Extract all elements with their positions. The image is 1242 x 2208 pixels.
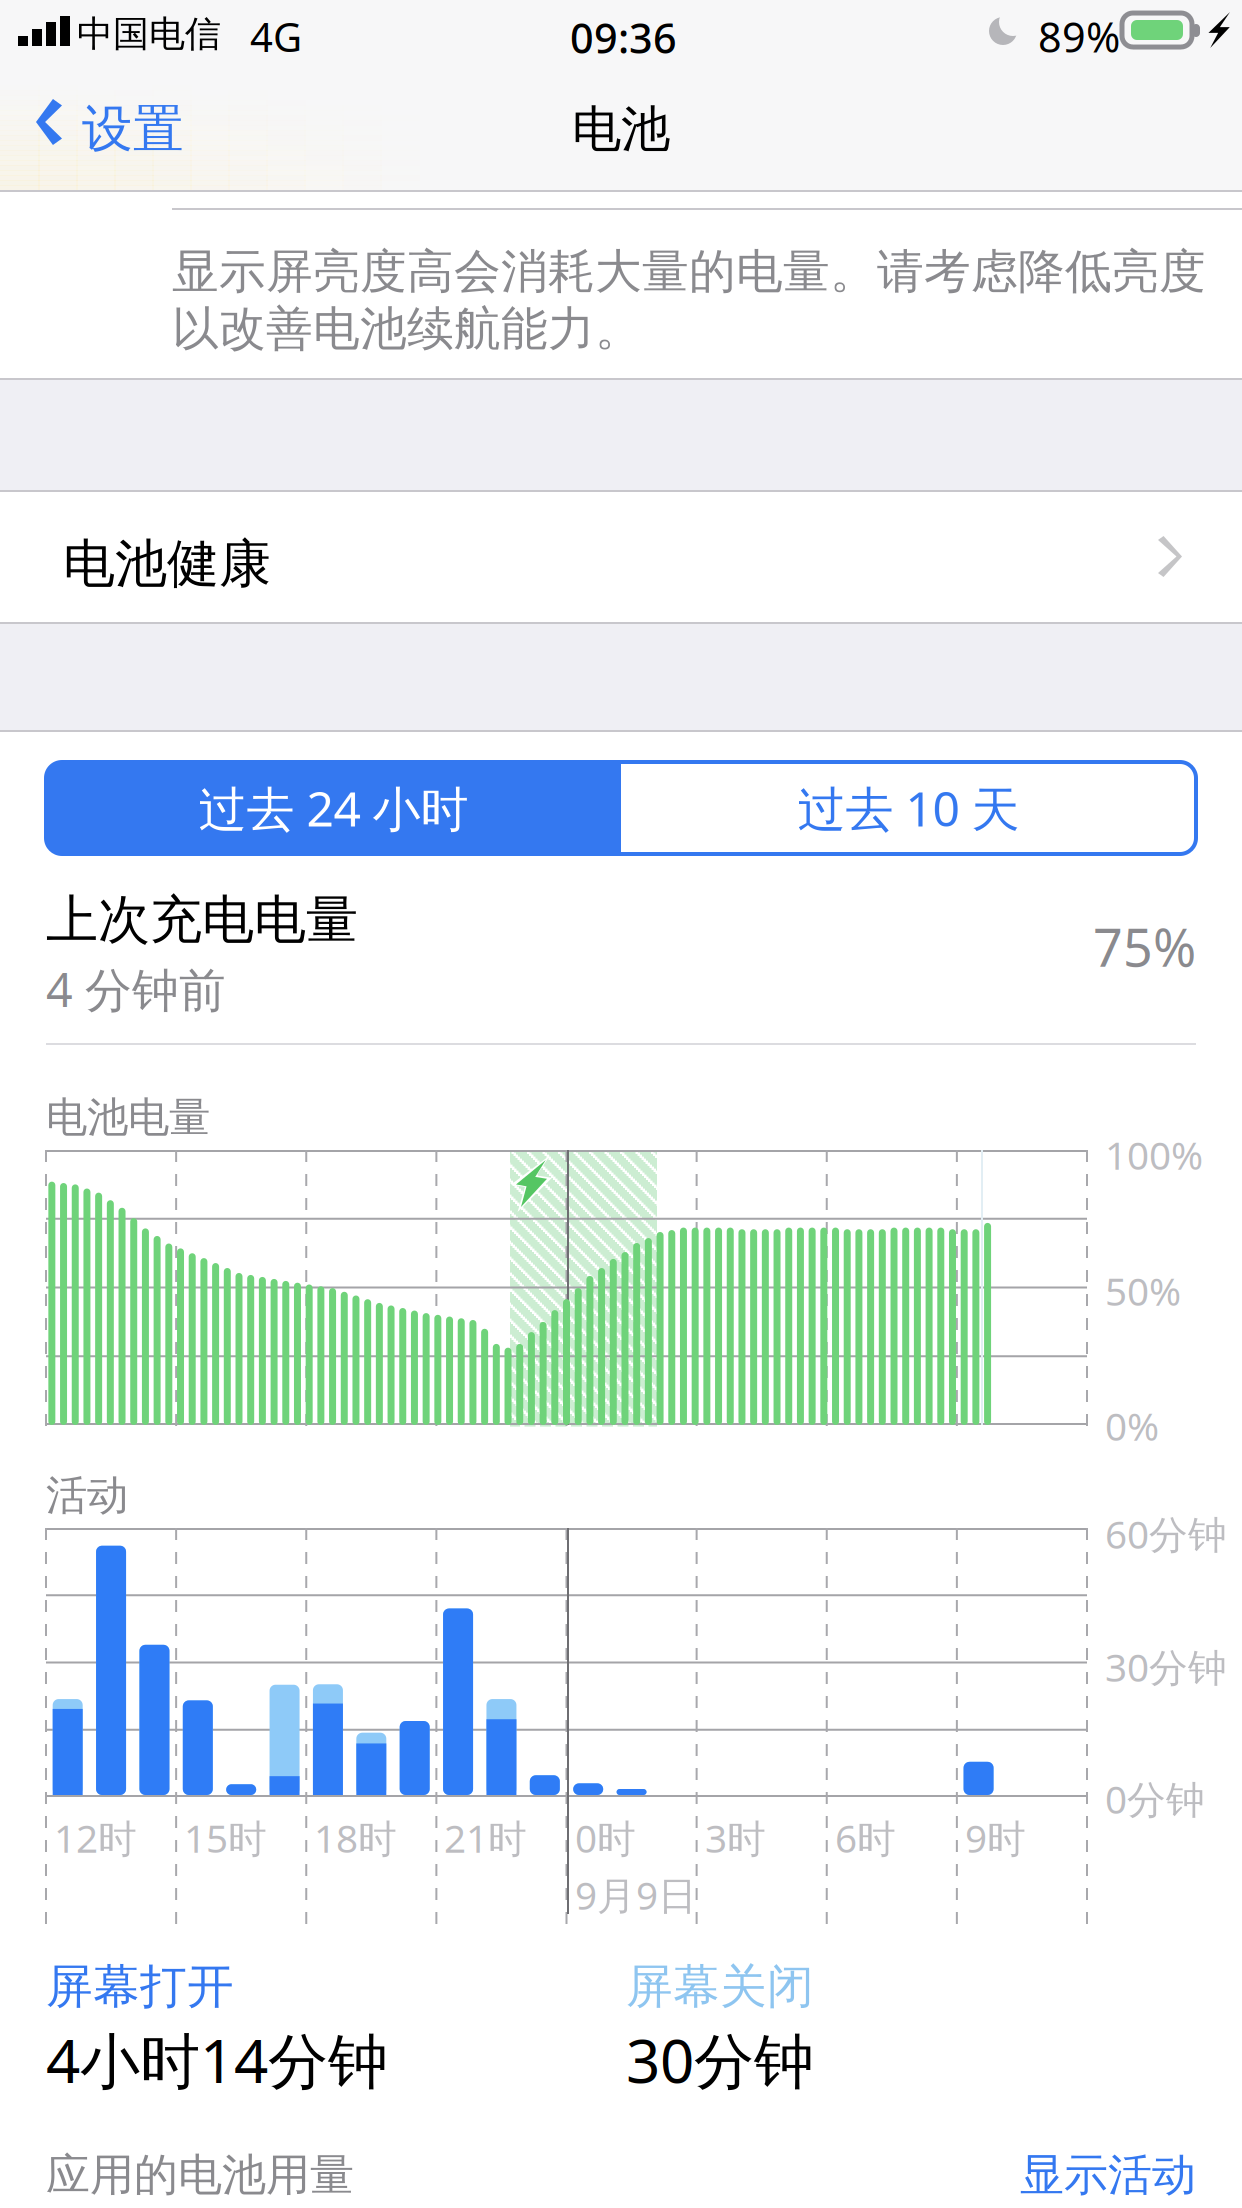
staticText: 09:36 <box>570 10 677 65</box>
staticText: 中国电信 <box>77 12 221 56</box>
staticText: 50% <box>1105 1265 1181 1316</box>
staticText: 4G <box>250 10 302 63</box>
staticText: 应用的电池用量 <box>46 2148 354 2202</box>
staticText: 电池电量 <box>46 1092 210 1143</box>
staticText: 30分钟 <box>1105 1641 1227 1692</box>
staticText: 电池 <box>572 99 670 160</box>
staticText: 过去 10 天 <box>797 776 1019 840</box>
button[interactable]: 电池健康 <box>0 492 1242 622</box>
staticText: 0分钟 <box>1105 1773 1205 1824</box>
staticText: 100% <box>1105 1129 1203 1180</box>
staticText: 18时 <box>314 1812 397 1863</box>
staticText: 电池健康 <box>63 532 271 596</box>
staticText: 89% <box>1038 9 1120 64</box>
button[interactable]: 过去 24 小时 <box>46 762 621 854</box>
staticText: 9时 <box>965 1812 1026 1863</box>
staticText: 15时 <box>184 1812 267 1863</box>
staticText: 活动 <box>46 1470 128 1521</box>
staticText: 60分钟 <box>1105 1508 1227 1559</box>
staticText: 30分钟 <box>626 2020 814 2100</box>
staticText: 12时 <box>54 1812 137 1863</box>
staticText: 0% <box>1105 1400 1159 1451</box>
staticText: 显示活动 <box>1020 2148 1196 2202</box>
staticText: 屏幕关闭 <box>626 1958 814 2015</box>
button[interactable]: 显示活动 <box>46 2148 1196 2202</box>
staticText: 3时 <box>705 1812 766 1863</box>
staticText: 显示屏亮度高会消耗大量的电量。请考虑降低亮度以改善电池续航能力。 <box>172 243 1206 358</box>
staticText: 21时 <box>444 1812 527 1863</box>
staticText: 上次充电电量 <box>46 888 358 952</box>
staticText: 4 分钟前 <box>46 958 226 1020</box>
staticText: 6时 <box>835 1812 896 1863</box>
button[interactable]: 设置 <box>0 74 250 170</box>
staticText: 屏幕打开 <box>46 1958 234 2015</box>
staticText: 过去 24 小时 <box>198 776 468 840</box>
staticText: 0时 <box>575 1812 636 1863</box>
staticText: 9月9日 <box>575 1869 697 1920</box>
staticText: 75% <box>1093 912 1196 981</box>
staticText: 设置 <box>82 98 184 160</box>
button[interactable]: 过去 10 天 <box>621 762 1196 854</box>
staticText: 4小时14分钟 <box>46 2020 388 2100</box>
